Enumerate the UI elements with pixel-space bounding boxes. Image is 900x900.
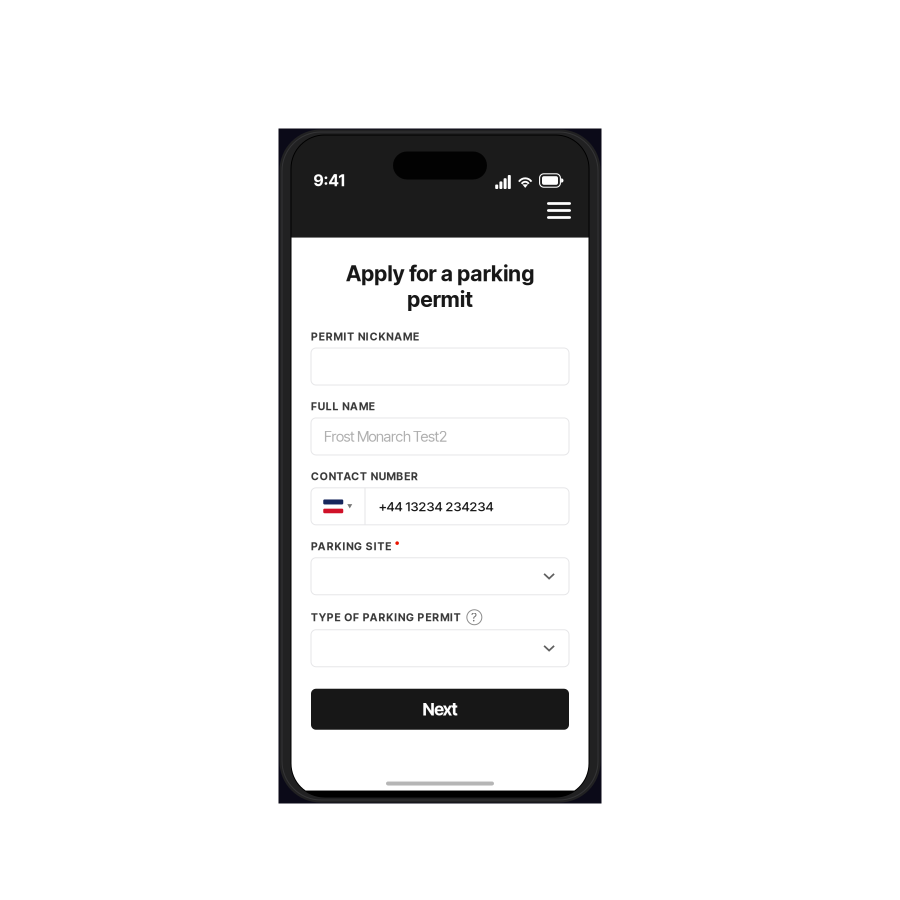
staticText: TYPE OF PARKING PERMIT — [311, 611, 461, 624]
button[interactable]: Frost Monarch Test2 — [311, 418, 569, 455]
button[interactable]: Help — [467, 610, 482, 625]
staticText: Apply for a parking permit — [346, 260, 534, 312]
staticText: PERMIT NICKNAME — [311, 330, 419, 343]
staticText: ? — [471, 610, 477, 624]
button[interactable] — [311, 348, 569, 385]
staticText: Next — [422, 699, 457, 720]
button[interactable]: Select — [311, 630, 569, 667]
button[interactable]: Country code — [311, 488, 364, 525]
button[interactable]: Next — [311, 689, 569, 730]
staticText: PARKING SITE — [311, 540, 391, 553]
staticText: +44 13234 234234 — [378, 498, 493, 514]
staticText: Frost Monarch Test2 — [324, 428, 447, 445]
staticText: CONTACT NUMBER — [311, 470, 418, 483]
staticText: 9:41 — [313, 171, 344, 190]
staticText: FULL NAME — [311, 400, 375, 413]
button[interactable]: Menu — [541, 195, 577, 225]
button[interactable]: Select — [311, 558, 569, 595]
